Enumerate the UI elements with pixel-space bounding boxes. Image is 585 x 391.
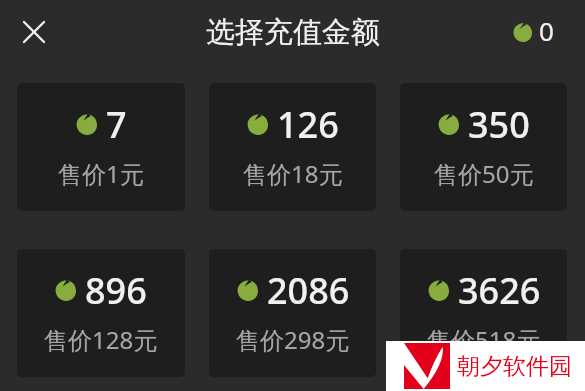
staticText: 售价128元 <box>44 323 158 356</box>
staticText: 售价298元 <box>236 323 350 356</box>
staticText: 售价18元 <box>243 157 343 190</box>
button[interactable]: 350 <box>400 83 567 211</box>
button[interactable]: 2086 <box>209 249 376 377</box>
staticText: 售价1元 <box>58 157 144 190</box>
staticText: 朝夕软件园 <box>457 352 572 381</box>
staticText: 0 <box>539 13 554 48</box>
staticText: 2086 <box>267 266 350 315</box>
staticText: 售价50元 <box>434 157 534 190</box>
button[interactable]: 126 <box>209 83 376 211</box>
button[interactable]: 0 <box>513 15 554 50</box>
staticText: 售价518元 <box>427 323 541 356</box>
staticText: 选择充值金额 <box>206 14 380 51</box>
staticText: 350 <box>468 100 530 149</box>
staticText: 3626 <box>458 266 541 315</box>
button[interactable]: 7 <box>17 83 185 211</box>
button[interactable]: 3626 <box>400 249 567 377</box>
staticText: 7 <box>106 100 127 149</box>
staticText: 896 <box>85 266 147 315</box>
staticText: 126 <box>277 100 339 149</box>
button[interactable]: 896 <box>17 249 185 377</box>
button[interactable]: Close <box>14 12 54 52</box>
